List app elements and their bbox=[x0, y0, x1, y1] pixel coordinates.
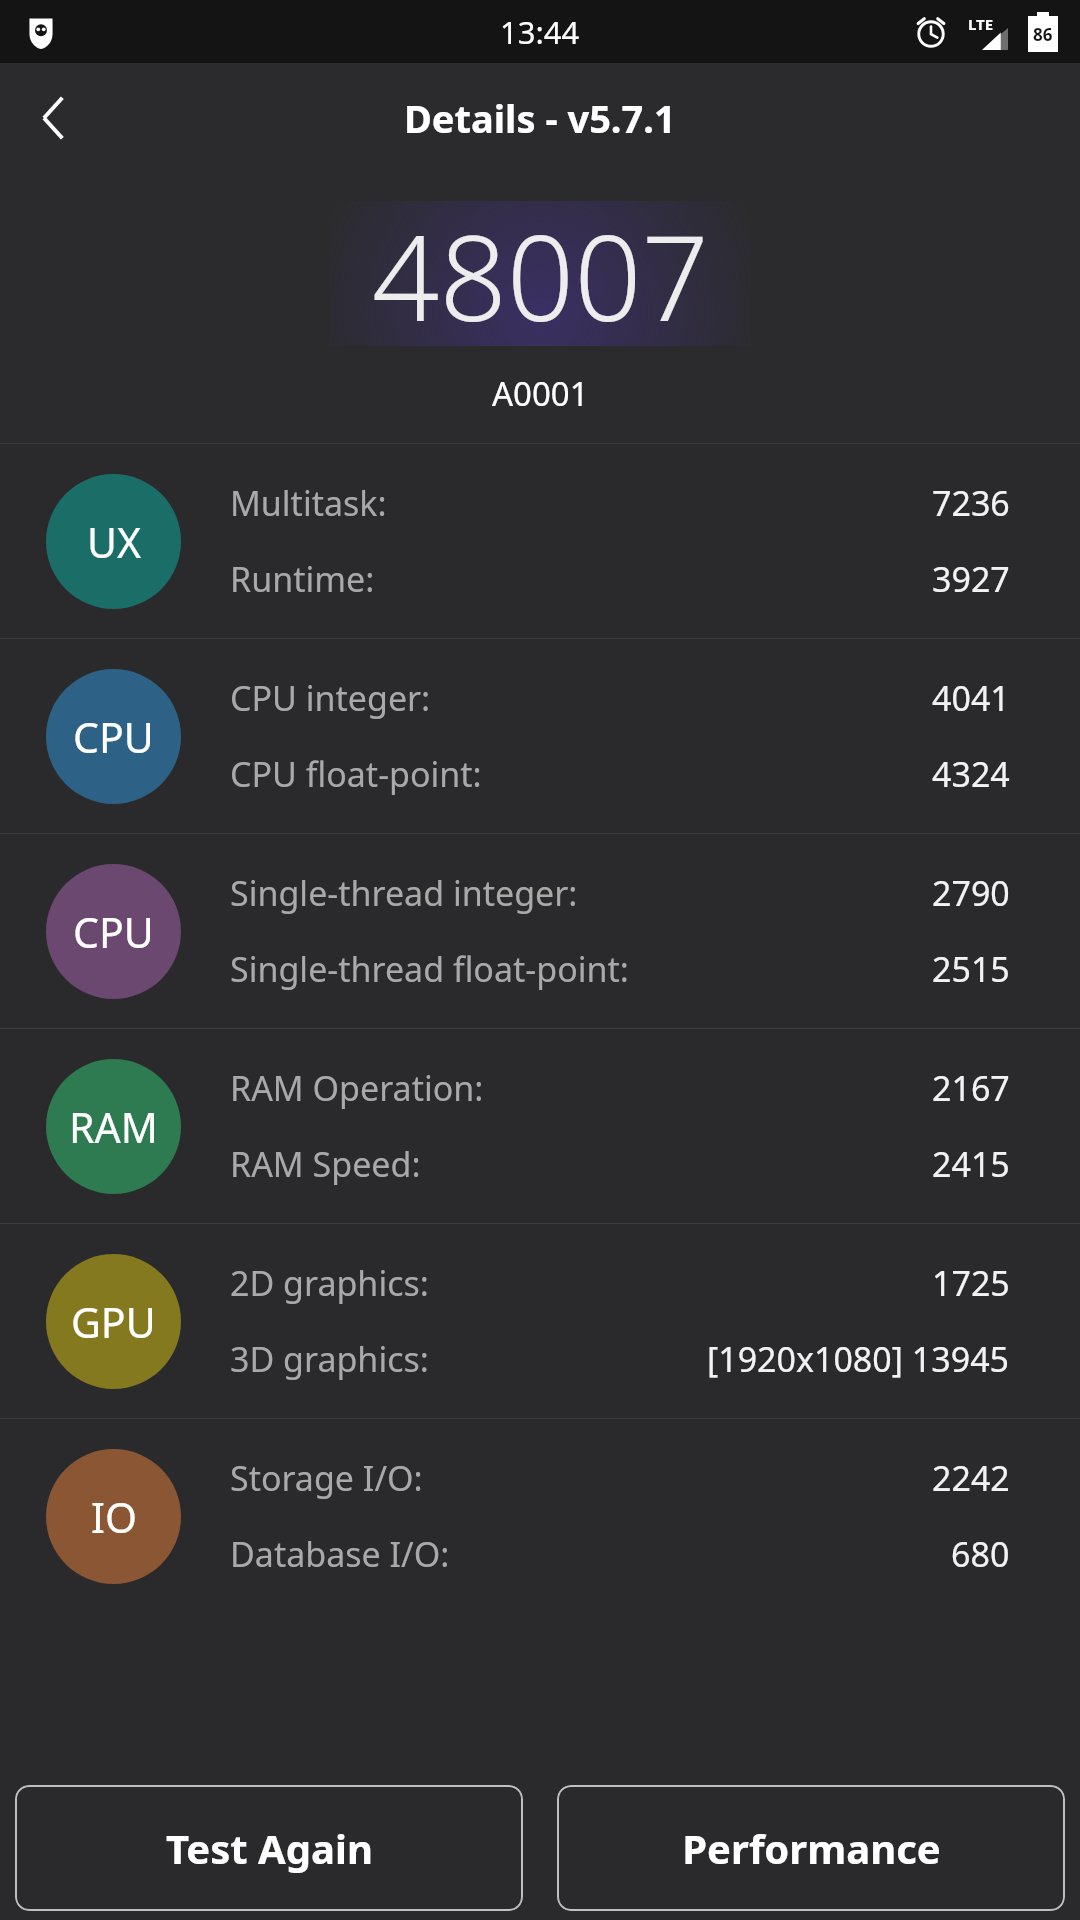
button[interactable]: Back bbox=[0, 63, 110, 173]
staticText: LTE bbox=[968, 14, 994, 34]
staticText: 4324 bbox=[932, 751, 1010, 797]
button[interactable]: CPU bbox=[0, 834, 1080, 1028]
staticText: Database I/O: bbox=[230, 1531, 450, 1577]
button[interactable]: UX bbox=[0, 444, 1080, 638]
staticText: Single-thread float-point: bbox=[230, 946, 629, 992]
button[interactable]: Test Again bbox=[15, 1785, 523, 1911]
staticText: Details - v5.7.1 bbox=[404, 92, 676, 144]
staticText: CPU integer: bbox=[230, 675, 431, 721]
staticText: GPU bbox=[71, 1294, 156, 1350]
staticText: 3927 bbox=[932, 556, 1010, 602]
staticText: 7236 bbox=[932, 480, 1010, 526]
staticText: 2242 bbox=[932, 1455, 1010, 1501]
staticText: Runtime: bbox=[230, 556, 375, 602]
staticText: 86 bbox=[1033, 23, 1053, 46]
staticText: [1920x1080] 13945 bbox=[707, 1336, 1010, 1382]
staticText: 2D graphics: bbox=[230, 1260, 429, 1306]
staticText: A0001 bbox=[492, 371, 589, 416]
staticText: Storage I/O: bbox=[230, 1455, 423, 1501]
staticText: IO bbox=[91, 1489, 137, 1545]
staticText: 1725 bbox=[932, 1260, 1010, 1306]
staticText: 3D graphics: bbox=[230, 1336, 429, 1382]
staticText: RAM Speed: bbox=[230, 1141, 421, 1187]
staticText: RAM bbox=[69, 1099, 158, 1155]
button[interactable]: Performance bbox=[557, 1785, 1065, 1911]
staticText: 2415 bbox=[932, 1141, 1010, 1187]
staticText: CPU bbox=[73, 904, 154, 960]
staticText: CPU bbox=[73, 709, 154, 765]
staticText: 2790 bbox=[932, 870, 1010, 916]
staticText: CPU float-point: bbox=[230, 751, 482, 797]
staticText: 2167 bbox=[932, 1065, 1010, 1111]
button[interactable]: IO bbox=[0, 1419, 1080, 1613]
staticText: Test Again bbox=[166, 1821, 373, 1875]
staticText: 2515 bbox=[932, 946, 1010, 992]
button[interactable]: CPU bbox=[0, 639, 1080, 833]
staticText: Single-thread integer: bbox=[230, 870, 578, 916]
button[interactable]: RAM bbox=[0, 1029, 1080, 1223]
staticText: Multitask: bbox=[230, 480, 387, 526]
staticText: 48007 bbox=[372, 195, 709, 356]
staticText: 13:44 bbox=[500, 11, 580, 53]
staticText: 4041 bbox=[932, 675, 1010, 721]
staticText: RAM Operation: bbox=[230, 1065, 484, 1111]
button[interactable]: GPU bbox=[0, 1224, 1080, 1418]
staticText: 680 bbox=[951, 1531, 1010, 1577]
staticText: Performance bbox=[682, 1821, 941, 1875]
staticText: UX bbox=[87, 514, 141, 570]
